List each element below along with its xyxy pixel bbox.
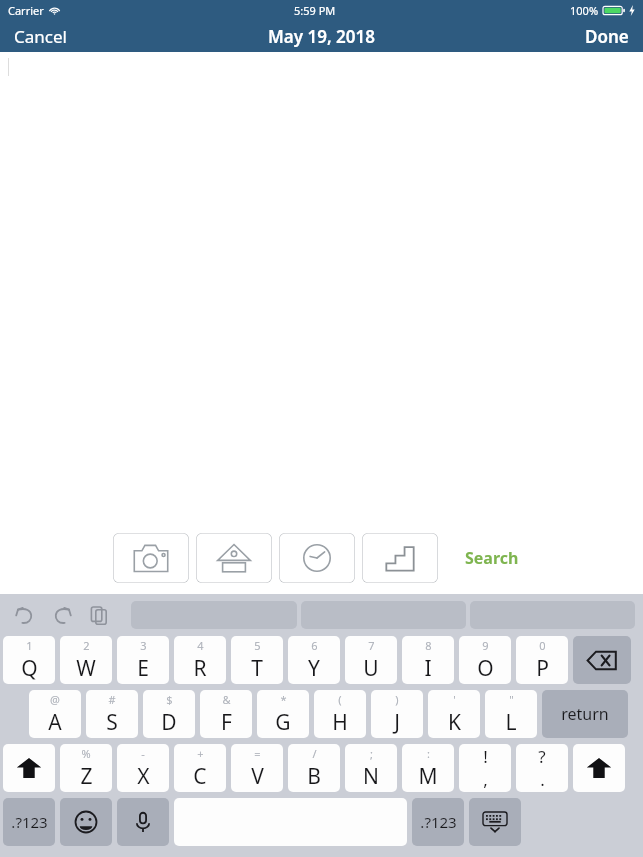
button[interactable]: Property	[196, 533, 272, 583]
button[interactable]: "	[485, 690, 537, 738]
button[interactable]: .?123	[3, 798, 55, 846]
button[interactable]: Dictation	[117, 798, 169, 846]
button[interactable]: $	[143, 690, 195, 738]
staticText: @	[50, 692, 60, 707]
staticText: I	[424, 654, 432, 683]
staticText: Y	[308, 654, 320, 683]
button[interactable]: *	[257, 690, 309, 738]
button[interactable]: Stairs	[362, 533, 438, 583]
staticText: =	[254, 746, 261, 761]
staticText: Search	[465, 547, 519, 569]
button[interactable]: Shift	[573, 744, 625, 792]
button[interactable]: Paste	[82, 598, 116, 632]
staticText: T	[251, 654, 263, 683]
button[interactable]: =	[231, 744, 283, 792]
button[interactable]: :	[402, 744, 454, 792]
button[interactable]: 7	[345, 636, 397, 684]
staticText: 0	[539, 638, 546, 653]
button[interactable]: 3	[117, 636, 169, 684]
button[interactable]: Cancel	[6, 21, 75, 52]
staticText: W	[76, 654, 96, 683]
staticText: F	[221, 708, 232, 737]
staticText: (	[338, 692, 342, 707]
button[interactable]: %	[60, 744, 112, 792]
staticText: U	[363, 654, 379, 683]
staticText: M	[418, 762, 438, 791]
button[interactable]: 0	[516, 636, 568, 684]
button[interactable]: Redo	[45, 598, 79, 632]
staticText: 6	[311, 638, 318, 653]
staticText: B	[307, 762, 321, 791]
staticText: 5:59 PM	[294, 3, 336, 18]
button[interactable]: @	[29, 690, 81, 738]
staticText: C	[193, 762, 207, 791]
button[interactable]: Emoji	[60, 798, 112, 846]
staticText: ?	[538, 745, 546, 768]
button[interactable]: Hide keyboard	[469, 798, 521, 846]
button[interactable]: 9	[459, 636, 511, 684]
staticText: 100%	[570, 3, 599, 18]
button[interactable]: ;	[345, 744, 397, 792]
staticText: V	[251, 762, 264, 791]
staticText: 8	[425, 638, 432, 653]
staticText: 4	[197, 638, 204, 653]
staticText: Q	[21, 654, 38, 683]
button[interactable]: .?123	[412, 798, 464, 846]
button[interactable]: 5	[231, 636, 283, 684]
button[interactable]: /	[288, 744, 340, 792]
button[interactable]: Backspace	[573, 636, 631, 684]
staticText: P	[536, 654, 549, 683]
staticText: 2	[83, 638, 90, 653]
staticText: .?123	[11, 812, 48, 832]
button[interactable]: )	[371, 690, 423, 738]
staticText: R	[193, 654, 207, 683]
button[interactable]: return	[542, 690, 628, 738]
staticText: O	[477, 654, 494, 683]
staticText: *	[280, 692, 287, 707]
button[interactable]: (	[314, 690, 366, 738]
staticText: &	[222, 692, 231, 707]
staticText: 1	[26, 638, 33, 653]
button[interactable]: ?	[516, 744, 568, 792]
staticText: /	[312, 746, 317, 761]
staticText: $	[166, 692, 173, 707]
staticText: #	[108, 692, 116, 707]
button[interactable]: 8	[402, 636, 454, 684]
staticText: H	[332, 708, 348, 737]
button[interactable]: Shift	[3, 744, 55, 792]
staticText: -	[141, 746, 145, 761]
button[interactable]: &	[200, 690, 252, 738]
button[interactable]: 4	[174, 636, 226, 684]
button[interactable]: 1	[3, 636, 55, 684]
button[interactable]: 2	[60, 636, 112, 684]
staticText: L	[505, 708, 517, 737]
staticText: J	[394, 708, 400, 737]
button[interactable]: 6	[288, 636, 340, 684]
button[interactable]: #	[86, 690, 138, 738]
button[interactable]: Done	[577, 21, 637, 52]
staticText: Carrier	[8, 3, 44, 18]
staticText: .	[540, 768, 545, 791]
button[interactable]: '	[428, 690, 480, 738]
staticText: 7	[368, 638, 375, 653]
staticText: N	[363, 762, 379, 791]
staticText: '	[453, 692, 456, 707]
staticText: G	[275, 708, 291, 737]
button[interactable]: Time	[279, 533, 355, 583]
button[interactable]: -	[117, 744, 169, 792]
button[interactable]: +	[174, 744, 226, 792]
staticText: .?123	[420, 812, 457, 832]
staticText: A	[48, 708, 62, 737]
staticText: +	[197, 746, 204, 761]
staticText: E	[137, 654, 149, 683]
button[interactable]: !	[459, 744, 511, 792]
button[interactable]: Search	[459, 541, 525, 575]
staticText: 5	[254, 638, 261, 653]
button[interactable]: Camera	[113, 533, 189, 583]
button[interactable]: Undo	[8, 598, 42, 632]
staticText: ,	[483, 768, 488, 791]
